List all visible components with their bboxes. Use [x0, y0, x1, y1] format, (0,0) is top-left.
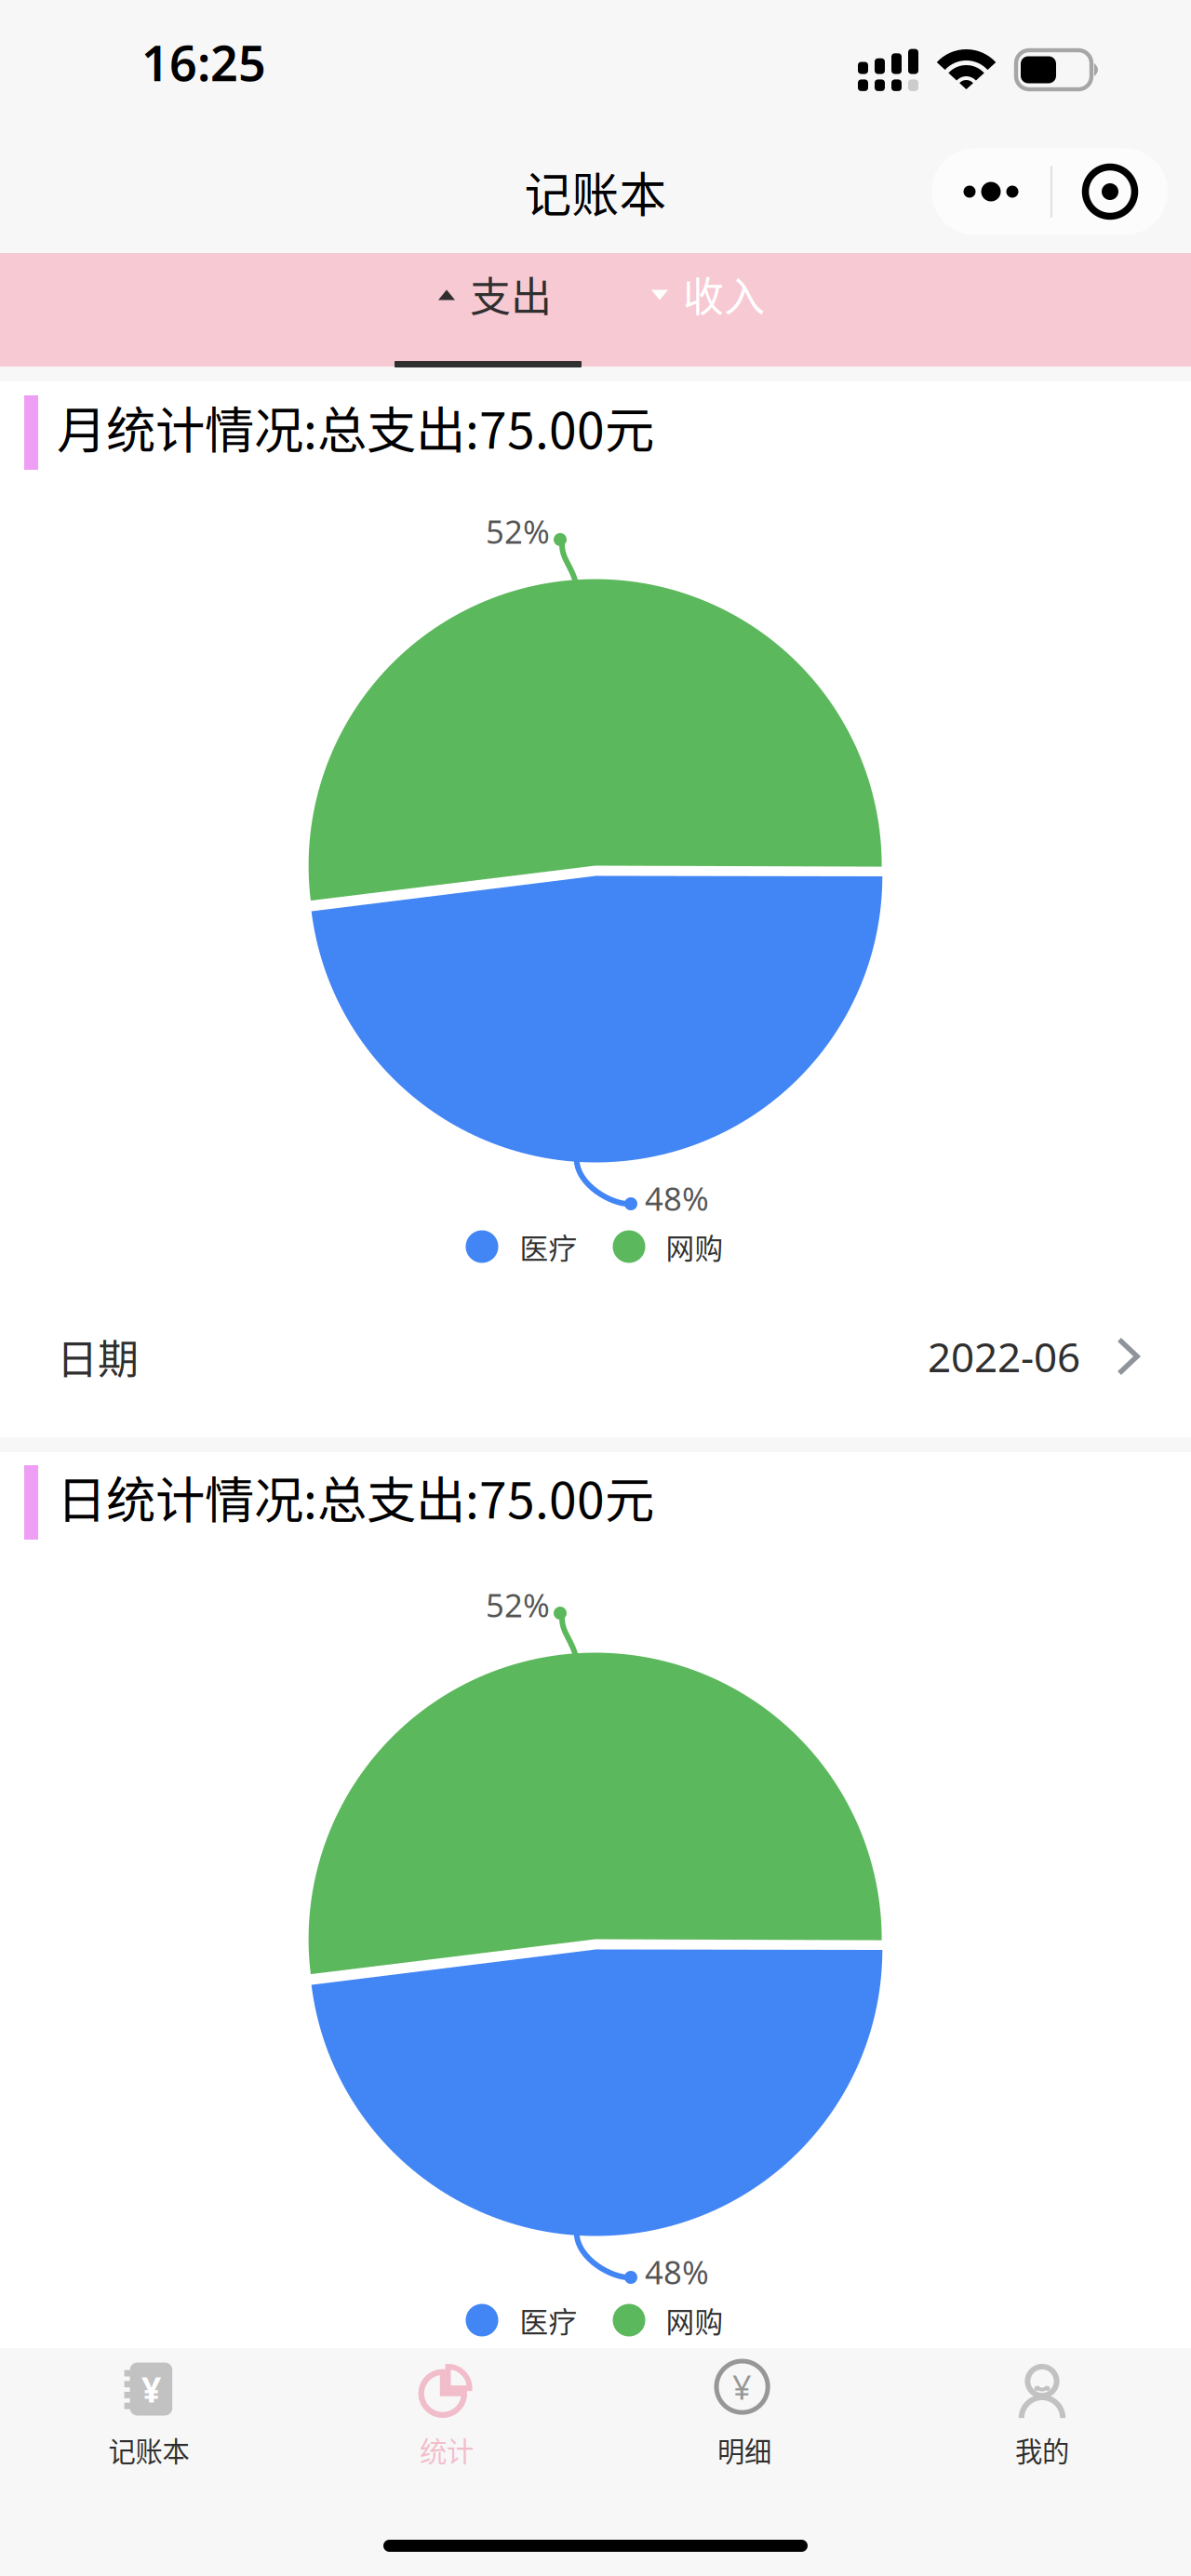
button[interactable]: ¥: [0, 2361, 298, 2510]
staticText: 记账本: [524, 157, 667, 226]
staticText: 52%: [486, 1583, 550, 1626]
staticText: 医疗: [520, 1226, 577, 1267]
staticText: 医疗: [520, 2300, 577, 2341]
staticText: 收入: [683, 264, 765, 324]
button[interactable]: 日期: [0, 1323, 1191, 1390]
staticText: ¥: [732, 2365, 752, 2409]
button[interactable]: 收入: [651, 268, 777, 320]
staticText: 48%: [645, 2250, 709, 2293]
staticText: 我的: [1015, 2430, 1069, 2469]
staticText: 2022-06: [928, 1329, 1080, 1384]
staticText: 记账本: [108, 2430, 189, 2469]
button[interactable]: 支出: [438, 268, 564, 320]
staticText: 16:25: [141, 30, 266, 95]
staticText: 52%: [486, 510, 550, 553]
staticText: 网购: [666, 1226, 723, 1267]
staticText: 日统计情况:总支出:75.00元: [57, 1461, 654, 1533]
staticText: 统计: [420, 2430, 474, 2469]
staticText: ¥: [141, 2366, 161, 2412]
button[interactable]: ¥: [595, 2361, 893, 2510]
staticText: 网购: [666, 2300, 723, 2341]
button[interactable]: 我的: [893, 2361, 1191, 2510]
button[interactable]: More options: [931, 148, 1168, 235]
staticText: 月统计情况:总支出:75.00元: [57, 391, 654, 463]
staticText: 48%: [645, 1177, 709, 1220]
staticText: 明细: [717, 2430, 771, 2469]
button[interactable]: 统计: [298, 2361, 595, 2510]
staticText: 日期: [57, 1327, 139, 1386]
staticText: 支出: [470, 264, 552, 324]
